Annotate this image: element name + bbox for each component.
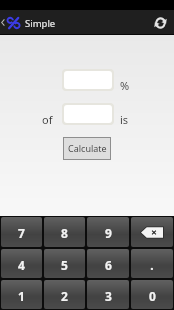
- staticText: Calculate: [68, 142, 107, 154]
- staticText: 3: [105, 288, 112, 304]
- staticText: 4: [18, 257, 25, 273]
- button[interactable]: Delete: [131, 217, 173, 247]
- button[interactable]: 2: [44, 280, 85, 309]
- staticText: 0: [149, 288, 156, 304]
- staticText: %: [120, 78, 130, 93]
- button[interactable]: 6: [87, 249, 129, 278]
- staticText: 6: [105, 257, 112, 273]
- button[interactable]: 1: [1, 280, 42, 309]
- button[interactable]: 5: [44, 249, 85, 278]
- staticText: 8: [61, 225, 68, 241]
- button[interactable]: .: [131, 249, 173, 278]
- button[interactable]: Simple: [0, 10, 64, 35]
- staticText: Simple: [25, 17, 56, 30]
- button[interactable]: Calculate: [63, 137, 111, 160]
- staticText: 1: [18, 288, 25, 304]
- button[interactable]: Swap values: [149, 11, 172, 34]
- button[interactable]: 0: [131, 280, 173, 309]
- button[interactable]: 4: [1, 249, 42, 278]
- staticText: 9: [105, 225, 112, 241]
- button[interactable]: 7: [1, 217, 42, 247]
- staticText: 5: [61, 257, 68, 273]
- staticText: of: [42, 112, 53, 127]
- staticText: 7: [18, 225, 25, 241]
- button[interactable]: 8: [44, 217, 85, 247]
- staticText: is: [120, 112, 129, 127]
- staticText: .: [150, 257, 154, 273]
- staticText: 2: [61, 288, 68, 304]
- button[interactable]: 3: [87, 280, 129, 309]
- button[interactable]: 9: [87, 217, 129, 247]
